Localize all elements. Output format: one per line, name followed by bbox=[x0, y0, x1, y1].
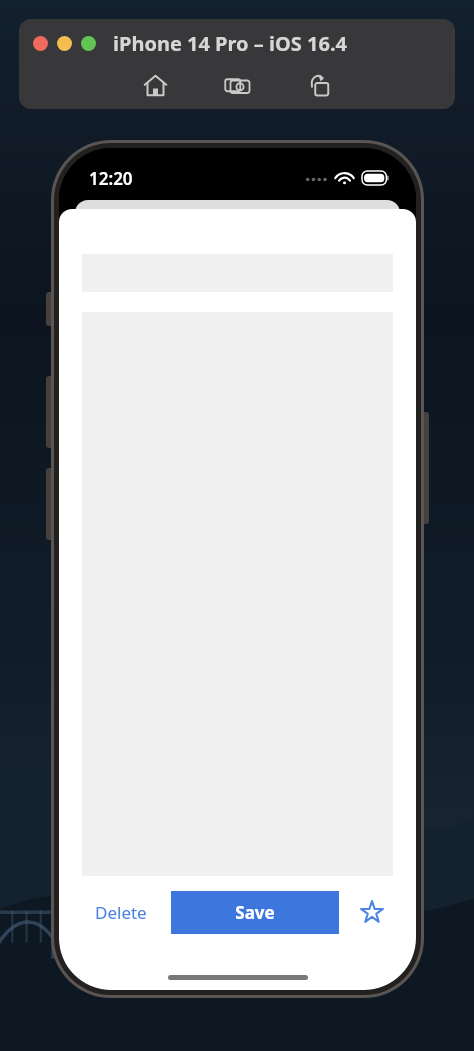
button[interactable]: Rotate bbox=[301, 67, 337, 103]
staticText: 12:20 bbox=[89, 167, 133, 190]
staticText: Save bbox=[235, 901, 275, 924]
button[interactable]: Favourite bbox=[350, 890, 394, 934]
button[interactable]: Home bbox=[137, 67, 173, 103]
button[interactable]: Save bbox=[171, 891, 339, 934]
staticText: Delete bbox=[95, 901, 147, 924]
button[interactable]: Zoom window bbox=[81, 36, 96, 51]
staticText: iPhone 14 Pro – iOS 16.4 bbox=[113, 30, 347, 57]
button[interactable]: Close window bbox=[33, 36, 48, 51]
button[interactable]: Minimise window bbox=[57, 36, 72, 51]
button[interactable]: Delete bbox=[81, 891, 161, 934]
button[interactable]: Screenshot bbox=[219, 67, 255, 103]
